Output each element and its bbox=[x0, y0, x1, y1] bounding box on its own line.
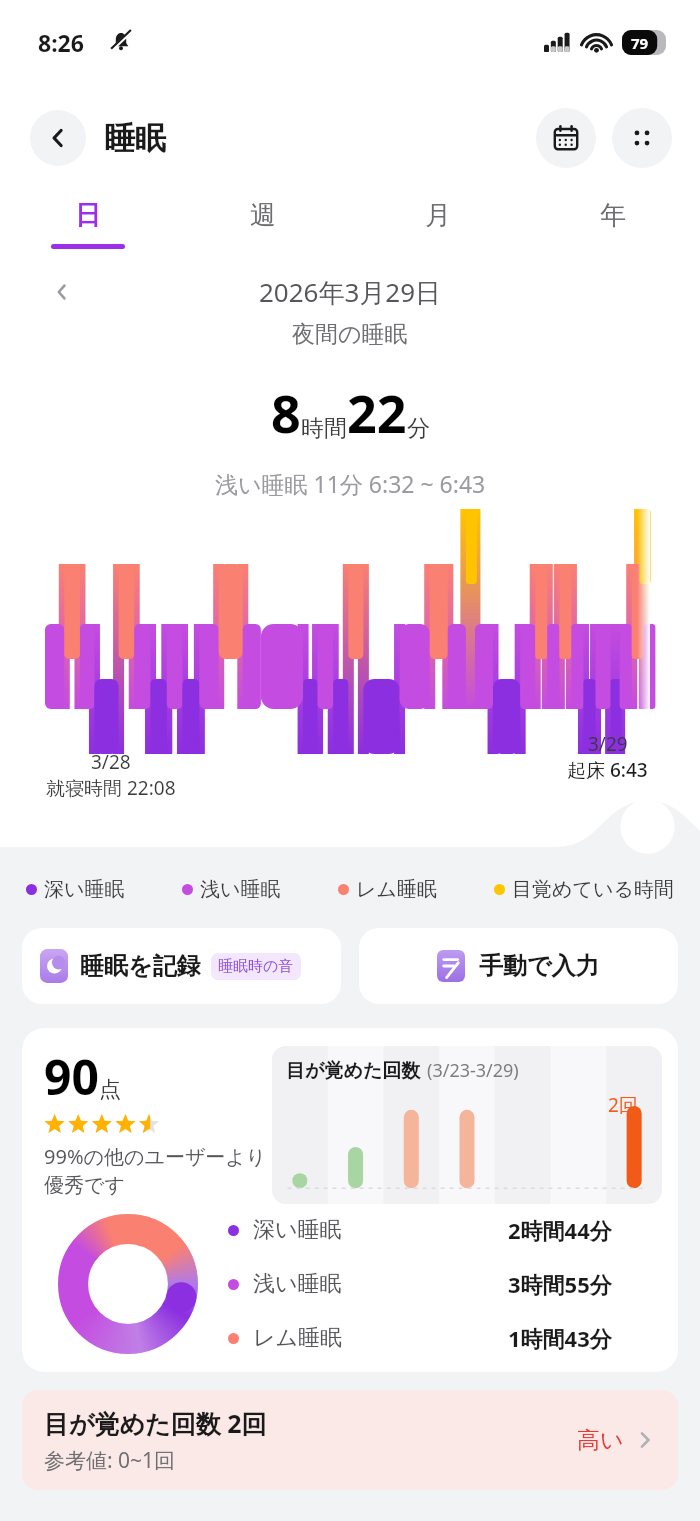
staticText: レム睡眠 bbox=[356, 877, 437, 902]
button[interactable]: More options bbox=[612, 108, 672, 168]
staticText: 浅い睡眠 bbox=[200, 877, 281, 902]
staticText: 月 bbox=[425, 199, 451, 232]
staticText: 3時間55分 bbox=[508, 1269, 612, 1299]
staticText: 睡眠を記録 bbox=[80, 951, 201, 981]
staticText: 深い睡眠 bbox=[44, 877, 125, 902]
staticText: 参考値: 0~1回 bbox=[44, 1446, 176, 1475]
staticText: 3/28 bbox=[91, 749, 131, 775]
staticText: 点 bbox=[99, 1076, 121, 1104]
button[interactable]: 睡眠を記録 bbox=[22, 928, 341, 1004]
staticText: 浅い睡眠 bbox=[253, 1270, 342, 1298]
staticText: 90 bbox=[44, 1044, 99, 1109]
staticText: 目が覚めた回数 2回 bbox=[44, 1406, 267, 1440]
button[interactable]: 深い睡眠 bbox=[228, 1215, 660, 1245]
staticText: 3/29 bbox=[588, 731, 628, 757]
staticText: 99%の他のユーザーより優秀です bbox=[44, 1143, 272, 1198]
staticText: 目覚めている時間 bbox=[512, 877, 674, 902]
staticText: 8:26 bbox=[38, 27, 84, 58]
button[interactable]: 年 bbox=[525, 184, 700, 264]
staticText: 高い bbox=[577, 1426, 624, 1455]
button[interactable]: Previous day bbox=[42, 272, 82, 312]
staticText: 2026年3月29日 bbox=[259, 274, 442, 310]
staticText: 79 bbox=[631, 33, 649, 53]
staticText: 週 bbox=[250, 199, 276, 232]
button[interactable]: 目が覚めた回数 2回 bbox=[22, 1390, 678, 1490]
staticText: 手動で入力 bbox=[479, 951, 600, 981]
staticText: 年 bbox=[600, 199, 626, 232]
button[interactable]: 週 bbox=[175, 184, 350, 264]
staticText: 睡眠時の音 bbox=[218, 957, 294, 976]
staticText: 目が覚めた回数 bbox=[286, 1059, 421, 1083]
staticText: 夜間の睡眠 bbox=[292, 320, 408, 349]
button[interactable]: 月 bbox=[350, 184, 525, 264]
staticText: 1時間43分 bbox=[508, 1323, 612, 1353]
staticText: 2回 bbox=[608, 1092, 638, 1118]
staticText: 浅い睡眠 11分 6:32 ~ 6:43 bbox=[215, 468, 486, 499]
button[interactable]: 手動で入力 bbox=[359, 928, 678, 1004]
staticText: 2時間44分 bbox=[508, 1215, 612, 1245]
button[interactable]: Calendar bbox=[536, 108, 596, 168]
button[interactable]: レム睡眠 bbox=[228, 1323, 660, 1353]
staticText: 分 bbox=[407, 414, 430, 443]
button[interactable]: Back bbox=[30, 110, 86, 166]
staticText: 就寝時間 22:08 bbox=[46, 775, 176, 801]
staticText: 睡眠 bbox=[104, 119, 166, 158]
staticText: 起床 6:43 bbox=[567, 757, 648, 783]
staticText: 時間 bbox=[301, 414, 347, 443]
staticText: 8 bbox=[271, 377, 301, 448]
button[interactable]: 日 bbox=[0, 184, 175, 264]
staticText: (3/23-3/29) bbox=[427, 1058, 519, 1083]
button[interactable]: 浅い睡眠 bbox=[228, 1269, 660, 1299]
staticText: レム睡眠 bbox=[253, 1324, 343, 1352]
staticText: 日 bbox=[75, 199, 101, 232]
staticText: 22 bbox=[347, 377, 407, 448]
staticText: 深い睡眠 bbox=[253, 1216, 342, 1244]
